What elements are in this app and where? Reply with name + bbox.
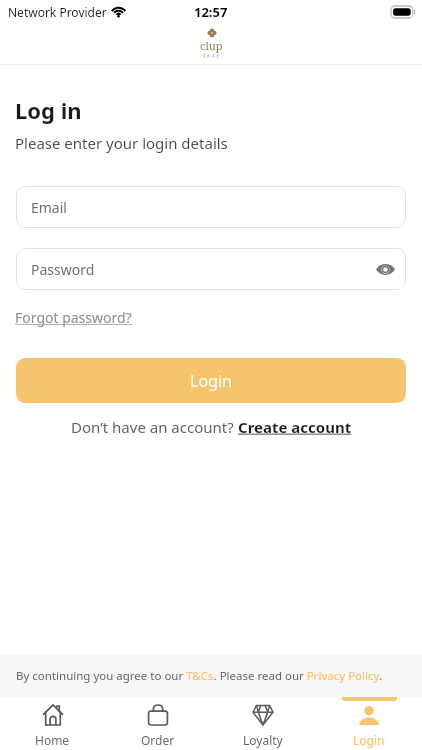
staticText: Login — [190, 370, 232, 392]
button[interactable]: Loyalty — [210, 697, 316, 750]
button[interactable]: Show password — [371, 255, 399, 283]
button[interactable]: Email — [16, 186, 406, 228]
button[interactable]: Forgot password? — [15, 308, 132, 327]
staticText: Don’t have an account? — [71, 417, 238, 437]
button[interactable]: Order — [105, 697, 210, 750]
staticText: Login — [353, 732, 385, 748]
staticText: clup — [200, 38, 223, 53]
staticText: Loyalty — [243, 732, 283, 748]
staticText: Password — [31, 260, 95, 279]
staticText: By continuing you agree to our T&Cs. Ple… — [16, 668, 383, 684]
button[interactable]: Login — [316, 697, 422, 750]
staticText: Forgot password? — [15, 308, 132, 327]
staticText: Network Provider — [8, 4, 107, 20]
staticText: Log in — [15, 95, 82, 125]
staticText: KA-FE — [203, 53, 220, 59]
staticText: Please enter your login details — [15, 133, 228, 153]
button[interactable]: Login — [16, 358, 406, 403]
button[interactable]: Password — [16, 248, 406, 290]
button[interactable]: Create account — [238, 417, 352, 437]
staticText: 12:57 — [194, 3, 228, 21]
button[interactable]: Home — [0, 697, 105, 750]
staticText: Order — [141, 732, 175, 748]
staticText: Create account — [238, 417, 352, 437]
staticText: Email — [31, 198, 67, 217]
staticText: Home — [35, 732, 70, 748]
